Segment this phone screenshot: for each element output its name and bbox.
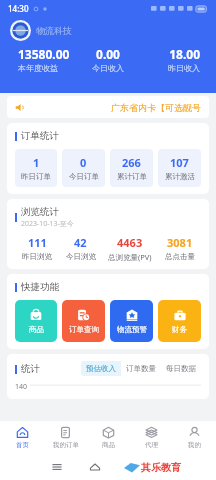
button[interactable]: 预估收入 <box>81 361 121 376</box>
staticText: 昨日收入 <box>142 63 200 73</box>
other: Home <box>89 461 101 473</box>
button[interactable]: 4463 <box>102 235 158 262</box>
button[interactable]: 订单数量 <box>121 361 161 376</box>
staticText: 快捷功能 <box>21 281 59 293</box>
staticText: 订单查询 <box>69 325 99 334</box>
button[interactable]: 107 <box>158 149 201 187</box>
staticText: 财务 <box>172 325 187 334</box>
button[interactable]: 0 <box>62 149 105 187</box>
button[interactable]: 42 <box>59 235 102 261</box>
staticText: 4463 <box>117 235 143 250</box>
staticText: 111 <box>28 235 47 250</box>
button[interactable]: 物流预警 <box>110 300 153 342</box>
staticText: 0 <box>80 155 87 170</box>
staticText: 3081 <box>167 235 193 250</box>
staticText: 42 <box>74 235 87 250</box>
staticText: 266 <box>122 155 141 170</box>
button[interactable]: 我的订单 <box>44 421 87 454</box>
staticText: 代理 <box>145 441 158 449</box>
staticText: 浏览统计 <box>21 206 59 218</box>
staticText: 广东省内卡【可选靓号 <box>111 102 201 113</box>
staticText: 本年度收益 <box>18 63 74 73</box>
button[interactable]: 1 <box>15 149 57 187</box>
staticText: 物流科技 <box>36 25 72 36</box>
staticText: 140 <box>15 382 28 392</box>
staticText: 今日浏览 <box>66 252 96 261</box>
button[interactable]: 商品 <box>15 300 57 342</box>
button[interactable]: 广东省内卡【可选靓号 <box>7 96 209 118</box>
staticText: 订单数量 <box>126 364 156 373</box>
button[interactable]: 111 <box>15 235 59 261</box>
button[interactable]: 订单查询 <box>62 300 105 342</box>
other: Recents <box>51 461 63 473</box>
staticText: 0.00 <box>74 46 142 62</box>
staticText: 昨日订单 <box>21 172 51 181</box>
staticText: 我的 <box>188 441 201 449</box>
staticText: 14:30 <box>8 3 29 14</box>
staticText: 物流预警 <box>117 325 147 334</box>
staticText: 每日数据 <box>166 364 196 373</box>
staticText: 1 <box>33 155 40 170</box>
staticText: 预估收入 <box>86 364 116 373</box>
staticText: 18.00 <box>142 46 200 62</box>
staticText: 商品 <box>102 441 115 449</box>
staticText: 我的订单 <box>53 441 79 449</box>
button[interactable]: 我的 <box>173 421 216 454</box>
button[interactable]: 首页 <box>0 421 44 454</box>
button[interactable]: 266 <box>110 149 153 187</box>
staticText: 统计 <box>21 363 40 375</box>
staticText: 订单统计 <box>21 130 59 142</box>
staticText: 商品 <box>29 325 44 334</box>
button[interactable]: 每日数据 <box>161 361 201 376</box>
staticText: 累计激活 <box>165 172 195 181</box>
staticText: 今日收入 <box>74 63 142 73</box>
button[interactable]: 财务 <box>158 300 201 342</box>
staticText: 首页 <box>16 441 29 449</box>
staticText: 累计订单 <box>117 172 147 181</box>
button[interactable]: 3081 <box>158 235 201 261</box>
staticText: 今日订单 <box>69 172 99 181</box>
staticText: 13580.00 <box>18 46 74 62</box>
staticText: 总点击量 <box>165 252 195 261</box>
staticText: 昨日浏览 <box>22 252 52 261</box>
staticText: 总浏览量(PV) <box>108 252 152 262</box>
staticText: 107 <box>170 155 189 170</box>
staticText: 2023-10-13-至今 <box>21 219 74 229</box>
button[interactable]: 代理 <box>130 421 173 454</box>
button[interactable]: 商品 <box>87 421 130 454</box>
staticText: 其乐教育 <box>141 461 181 474</box>
